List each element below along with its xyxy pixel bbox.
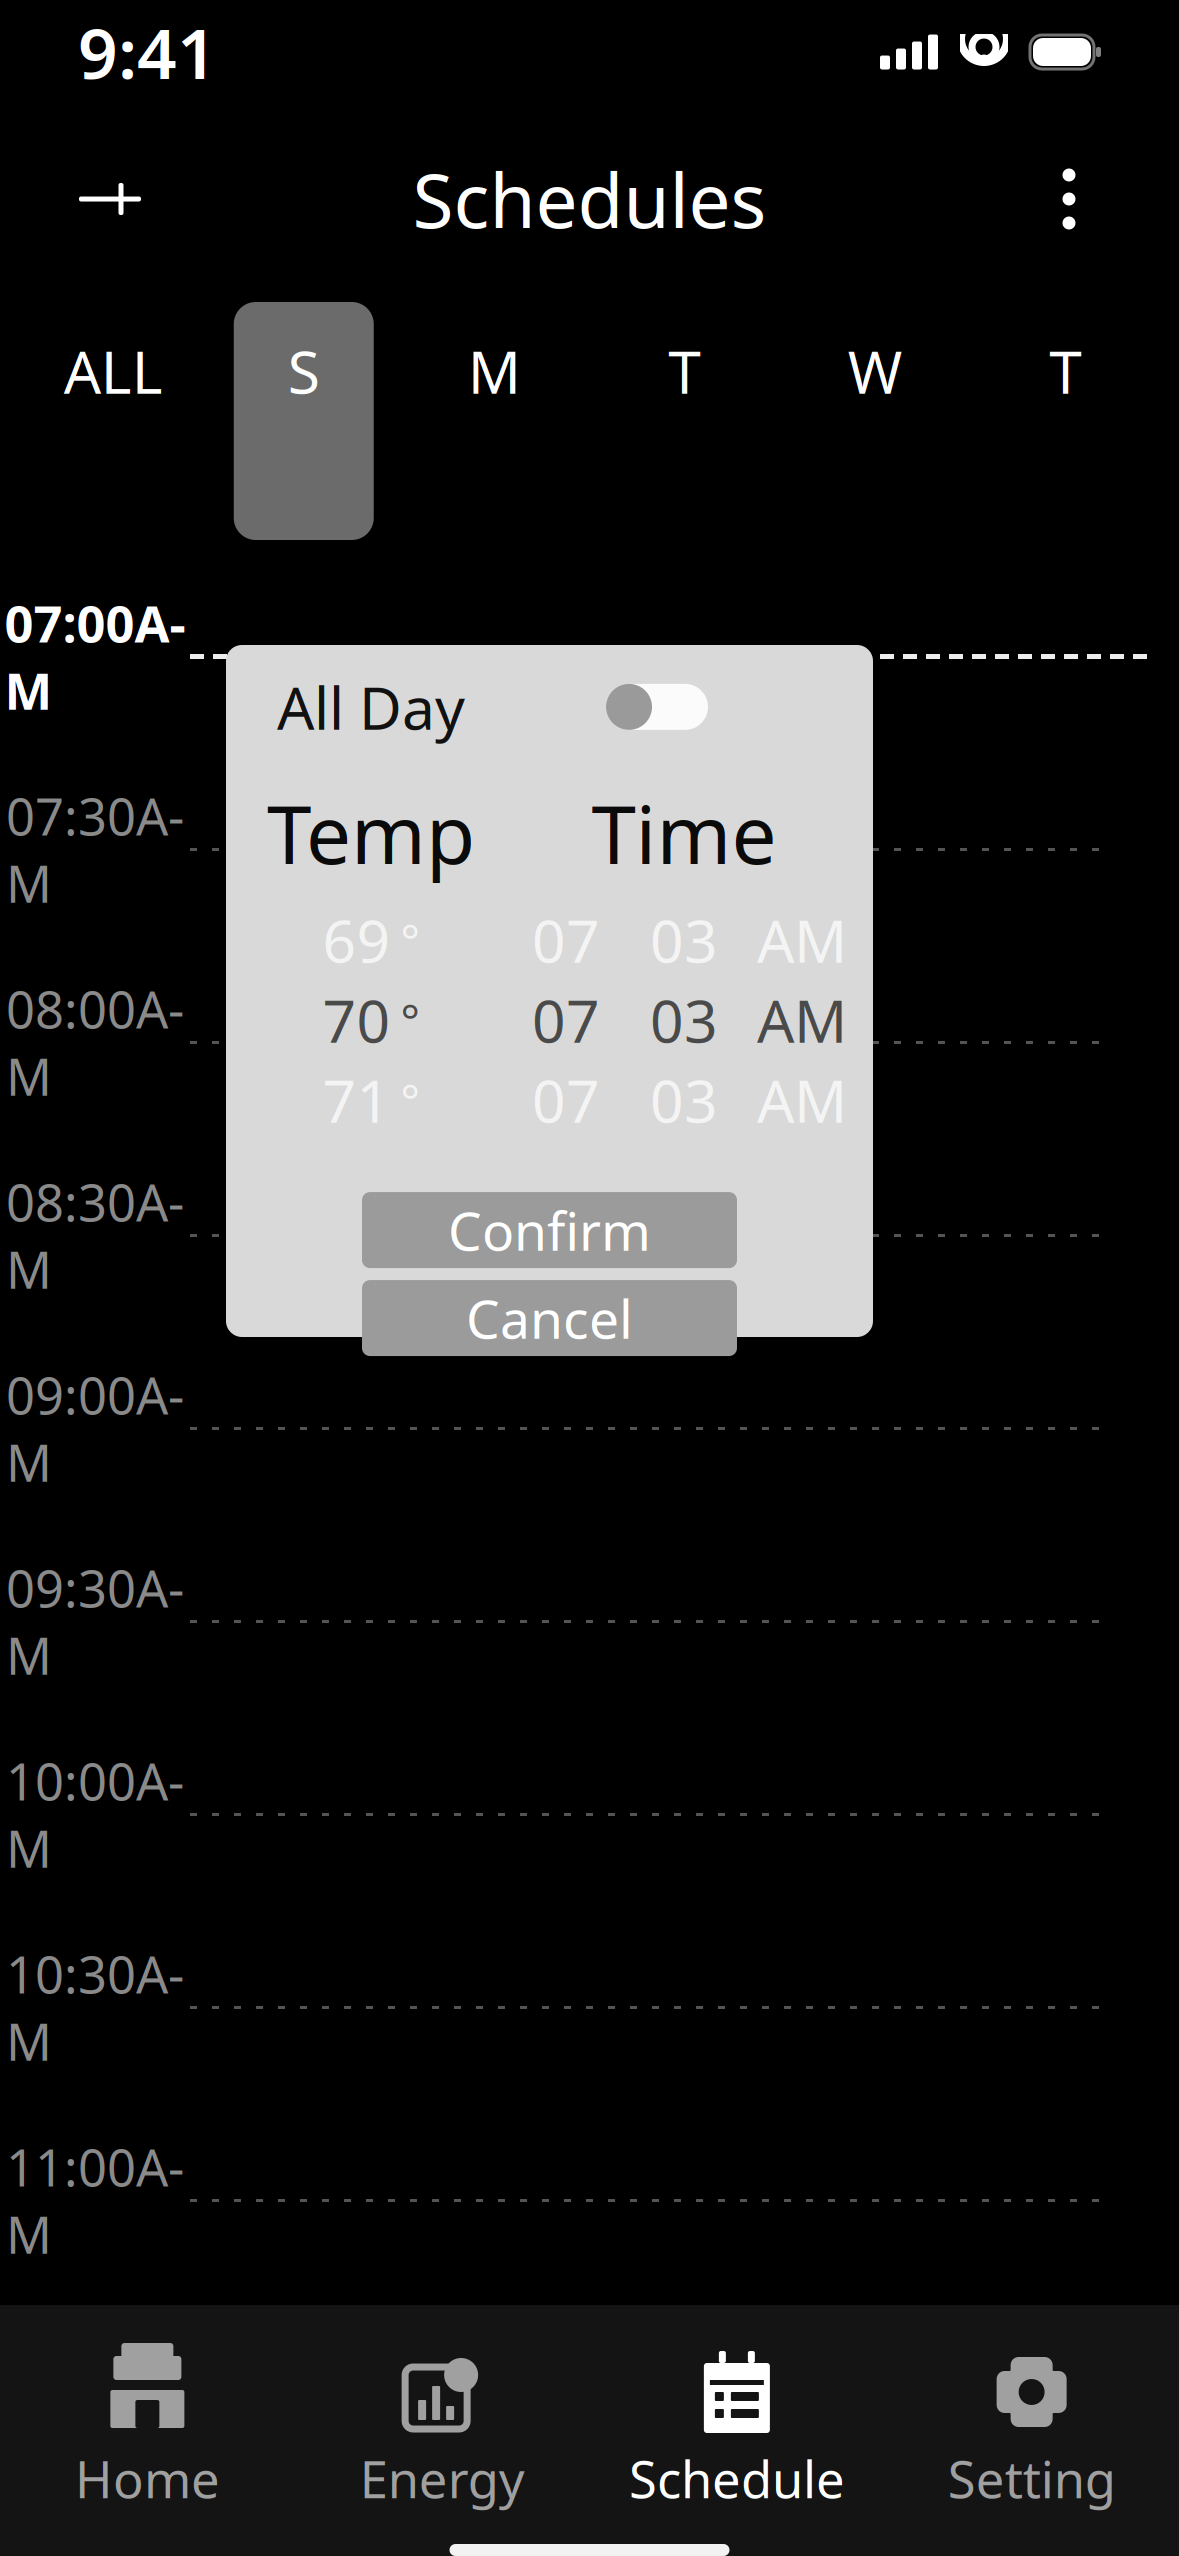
staticText: Energy [360,2445,525,2512]
button[interactable]: Confirm [362,1192,737,1268]
button[interactable]: All Day [606,684,708,730]
staticText: Schedule [629,2445,845,2512]
staticText: AM [757,901,847,979]
staticText: AM [757,1061,847,1139]
staticText: ° [400,910,419,970]
staticText: 10:00AM [6,1747,184,1882]
button[interactable]: Energy [295,2339,590,2526]
staticText: 08:00AM [6,975,184,1110]
staticText: Confirm [448,1195,651,1265]
button[interactable]: M [399,302,589,540]
staticText: ° [400,1070,419,1130]
button[interactable]: Cancel [362,1280,737,1356]
staticText: ° [400,990,419,1050]
staticText: 09:00AM [6,1361,184,1496]
staticText: 09:30AM [6,1554,184,1689]
button[interactable]: Setting [884,2339,1179,2526]
staticText: Home [75,2445,220,2512]
staticText: M [468,332,521,410]
staticText: 03 [650,981,718,1059]
staticText: 69 [322,901,390,979]
staticText: 07:00AM [4,589,185,724]
staticText: 70 [322,981,390,1059]
staticText: 07 [532,1061,600,1139]
button[interactable]: W [780,302,970,540]
staticText: 08:30AM [6,1168,184,1303]
staticText: T [668,332,701,410]
staticText: Schedules [412,149,766,249]
button[interactable]: More options [1021,151,1117,247]
staticText: 03 [650,901,718,979]
button[interactable]: S [208,302,399,540]
button[interactable]: ALL [18,302,208,540]
staticText: Temp [267,780,475,886]
staticText: 10:30AM [6,1940,184,2075]
button[interactable]: Home [0,2339,295,2526]
staticText: S [288,332,320,410]
button[interactable]: Schedule [589,2339,884,2526]
staticText: 71 [322,1061,390,1139]
staticText: AM [757,981,847,1059]
staticText: 9:41 [78,6,217,98]
staticText: Time [591,780,776,886]
staticText: 07:30AM [6,782,184,917]
staticText: T [1049,332,1082,410]
staticText: 07 [532,981,600,1059]
staticText: ALL [64,332,163,410]
staticText: 03 [650,1061,718,1139]
staticText: Cancel [466,1283,633,1353]
button[interactable]: T [970,302,1161,540]
button[interactable]: T [589,302,780,540]
staticText: Setting [948,2445,1116,2512]
staticText: 11:00AM [6,2133,184,2268]
button[interactable]: Back [62,151,158,247]
staticText: 07 [532,901,600,979]
staticText: W [848,332,903,410]
staticText: All Day [277,668,465,746]
